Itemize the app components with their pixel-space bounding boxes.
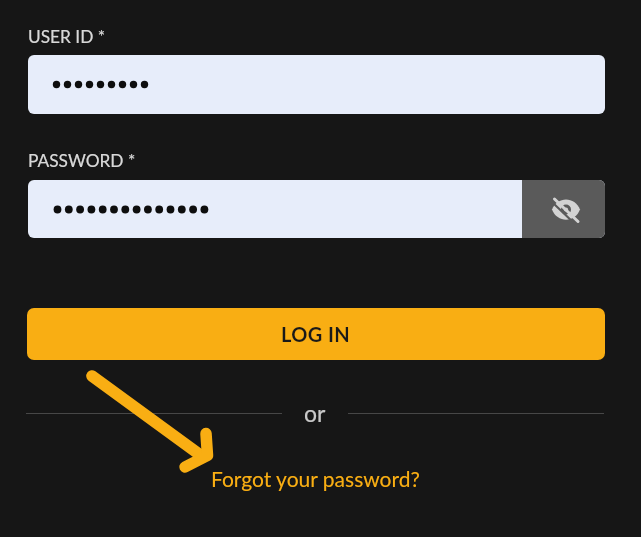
staticText: or [304, 399, 326, 427]
staticText: USER ID * [28, 26, 106, 47]
staticText: PASSWORD * [28, 150, 136, 171]
staticText: LOG IN [281, 322, 351, 346]
staticText: Forgot your password? [211, 466, 420, 491]
button[interactable] [28, 180, 605, 238]
button[interactable] [28, 55, 605, 114]
button[interactable]: LOG IN [27, 308, 605, 360]
button[interactable]: Forgot your password? [0, 466, 630, 491]
button[interactable] [522, 180, 605, 238]
